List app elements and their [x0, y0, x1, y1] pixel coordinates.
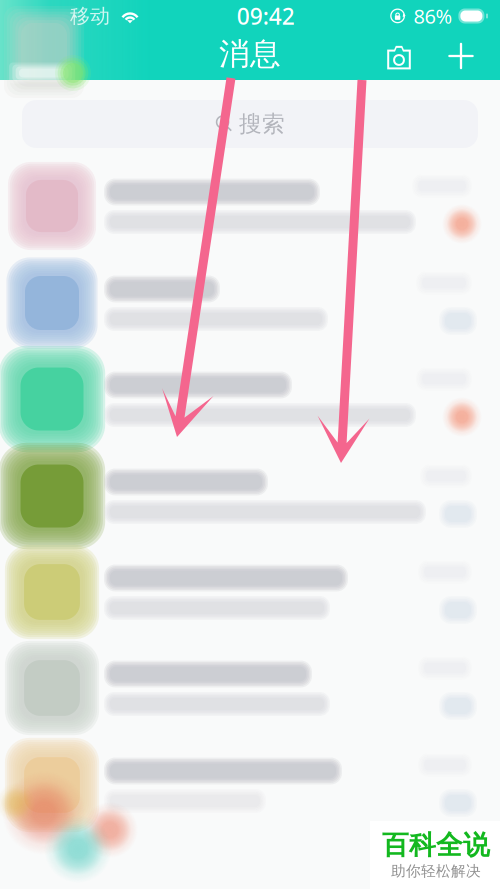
button[interactable] — [0, 448, 500, 544]
button[interactable]: New chat — [435, 33, 487, 79]
staticText: 百科全说 — [382, 829, 490, 861]
staticText: 09:42 — [237, 1, 295, 31]
staticText: 助你轻松解决 — [391, 862, 481, 880]
staticText: 移动 — [70, 4, 110, 28]
button[interactable] — [0, 158, 500, 254]
staticText: 搜索 — [239, 110, 285, 138]
staticText: 消息 — [219, 35, 281, 73]
button[interactable]: Camera — [373, 34, 425, 80]
button[interactable] — [0, 255, 500, 351]
button[interactable] — [0, 737, 500, 833]
staticText: 86% — [413, 3, 452, 29]
button[interactable] — [0, 351, 500, 447]
button[interactable] — [0, 640, 500, 736]
button[interactable] — [0, 833, 500, 889]
button[interactable] — [0, 544, 500, 640]
button[interactable]: 搜索 — [22, 100, 478, 148]
